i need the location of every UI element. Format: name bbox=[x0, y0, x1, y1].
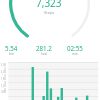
staticText: kcal bbox=[41, 52, 47, 56]
staticText: 5.54 bbox=[5, 44, 18, 52]
staticText: 1,800 bbox=[0, 77, 6, 85]
staticText: 600 bbox=[0, 90, 6, 94]
staticText: min bbox=[72, 52, 78, 56]
staticText: 281.2 bbox=[36, 44, 52, 52]
staticText: 7,323 bbox=[36, 0, 62, 10]
button[interactable]: 02:55 bbox=[63, 44, 86, 56]
staticText: km bbox=[9, 52, 14, 56]
staticText: 2,400 bbox=[0, 70, 6, 78]
staticText: Steps bbox=[44, 10, 55, 15]
staticText: 3,000 bbox=[0, 63, 6, 71]
staticText: 02:55 bbox=[67, 44, 83, 52]
button[interactable]: 281.2 bbox=[33, 44, 55, 56]
staticText: 1,200 bbox=[0, 84, 6, 92]
button[interactable]: 5.54 bbox=[0, 44, 22, 56]
